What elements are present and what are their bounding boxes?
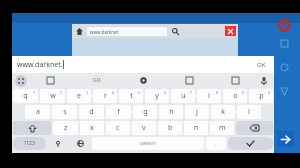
button[interactable]: d	[79, 105, 104, 119]
button[interactable]: Backspace	[236, 121, 273, 135]
staticText: y	[155, 91, 159, 101]
staticText: q	[23, 91, 28, 101]
staticText: QWERTY	[140, 141, 157, 146]
button[interactable]: Power	[276, 17, 292, 33]
staticText: z	[64, 123, 68, 133]
staticText: c	[116, 123, 120, 133]
button[interactable]: l	[237, 105, 261, 119]
button[interactable]: j	[185, 105, 209, 119]
staticText: GIF	[93, 77, 102, 84]
button[interactable]: e	[67, 89, 91, 103]
staticText: x	[90, 123, 94, 133]
button[interactable]: GIF	[74, 73, 120, 88]
button[interactable]: Stickers	[166, 73, 212, 88]
staticText: a	[36, 107, 40, 117]
button[interactable]: g	[133, 105, 157, 119]
staticText: 1	[33, 90, 36, 95]
button[interactable]: Desktop shortcut 1	[279, 38, 289, 48]
button[interactable]: Close	[225, 26, 236, 36]
staticText: h	[169, 107, 174, 117]
staticText: 8	[216, 90, 219, 95]
button[interactable]: Settings	[120, 73, 166, 88]
button[interactable]: f	[106, 105, 131, 119]
button[interactable]: k	[211, 105, 235, 119]
button[interactable]: v	[132, 121, 156, 135]
staticText: e	[77, 91, 81, 101]
button[interactable]: Clipboard	[27, 73, 74, 88]
button[interactable]: a	[25, 105, 50, 119]
button[interactable]: Emoji	[48, 137, 68, 150]
staticText: 9	[242, 90, 245, 95]
staticText: m	[219, 123, 226, 133]
staticText: 2	[60, 90, 63, 95]
button[interactable]: z	[53, 121, 78, 135]
staticText: f	[117, 107, 120, 117]
button[interactable]: Change language	[70, 137, 90, 150]
staticText: t	[130, 91, 133, 101]
staticText: 0	[268, 90, 271, 95]
button[interactable]: Translate	[212, 73, 258, 88]
button[interactable]: Desktop shortcut 2	[279, 62, 289, 72]
staticText: l	[248, 107, 250, 117]
staticText: s	[63, 107, 67, 117]
button[interactable]: q	[13, 89, 38, 103]
button[interactable]: u	[171, 89, 195, 103]
button[interactable]: h	[159, 105, 183, 119]
staticText: i	[208, 91, 210, 101]
button[interactable]: Voice input	[258, 75, 270, 87]
button[interactable]: i	[197, 89, 221, 103]
staticText: p	[259, 91, 264, 101]
button[interactable]: x	[80, 121, 104, 135]
button[interactable]: www.darknet	[87, 27, 167, 36]
staticText: .	[215, 140, 217, 148]
staticText: 7	[190, 90, 193, 95]
staticText: g	[143, 107, 148, 117]
button[interactable]: b	[158, 121, 182, 135]
button[interactable]: OK	[254, 61, 269, 69]
staticText: www.darknet	[90, 29, 119, 35]
staticText: r	[104, 91, 107, 101]
staticText: 6	[164, 90, 167, 95]
button[interactable]: Space	[92, 137, 204, 150]
button[interactable]: w	[40, 89, 65, 103]
staticText: k	[221, 107, 225, 117]
button[interactable]: Done	[228, 137, 273, 150]
staticText: o	[233, 91, 238, 101]
button[interactable]: n	[184, 121, 208, 135]
button[interactable]: r	[93, 89, 117, 103]
staticText: n	[194, 123, 199, 133]
button[interactable]: www.darknet.	[12, 56, 274, 73]
staticText: d	[89, 107, 94, 117]
button[interactable]: Home	[74, 26, 85, 37]
button[interactable]: t	[119, 89, 143, 103]
staticText: 5	[138, 90, 141, 95]
staticText: b	[168, 123, 173, 133]
staticText: ?123	[24, 140, 35, 147]
button[interactable]: Open features	[15, 75, 27, 87]
button[interactable]: ?123	[13, 137, 46, 150]
staticText: v	[142, 123, 146, 133]
button[interactable]: Shift	[13, 121, 51, 135]
staticText: www.darknet.	[17, 60, 63, 70]
button[interactable]: p	[249, 89, 273, 103]
staticText: u	[181, 91, 186, 101]
button[interactable]: m	[210, 121, 234, 135]
staticText: 3	[86, 90, 89, 95]
button[interactable]: c	[106, 121, 130, 135]
button[interactable]: Search	[170, 26, 181, 37]
button[interactable]: o	[223, 89, 247, 103]
staticText: j	[196, 107, 198, 117]
staticText: OK	[257, 61, 266, 69]
button[interactable]: .	[206, 137, 226, 150]
button[interactable]: Desktop shortcut 3	[279, 86, 289, 96]
staticText: w	[50, 91, 56, 101]
button[interactable]: Enter	[277, 131, 294, 147]
staticText: 4	[112, 90, 115, 95]
button[interactable]: y	[145, 89, 169, 103]
button[interactable]: s	[52, 105, 77, 119]
